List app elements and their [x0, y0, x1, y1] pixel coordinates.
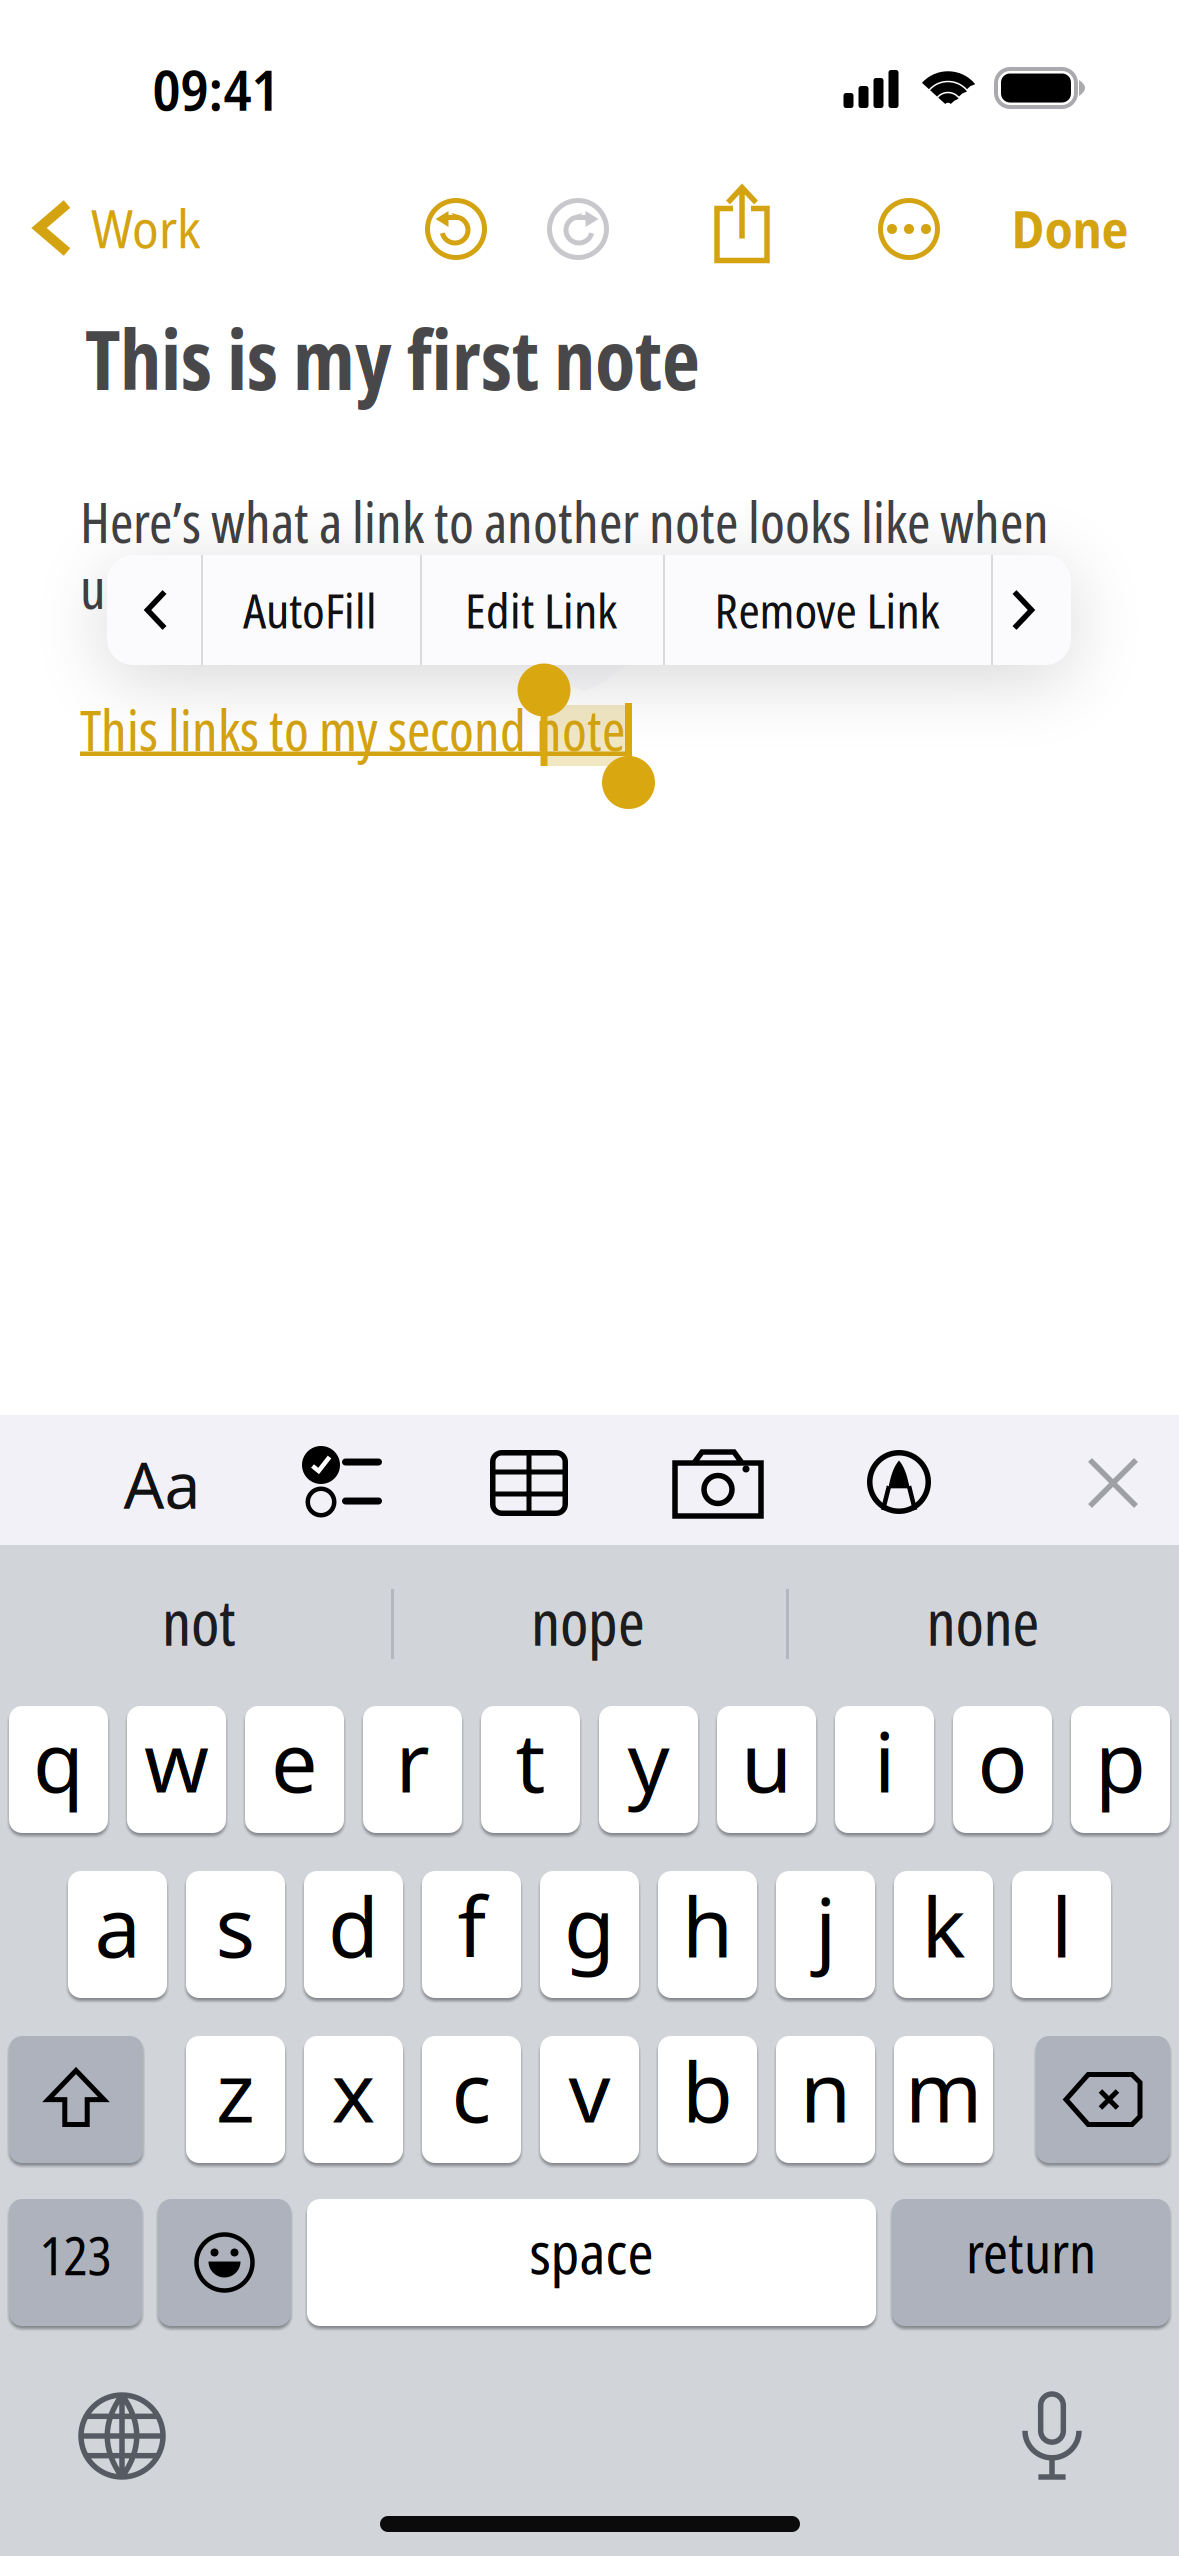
- button[interactable]: More menu items: [985, 557, 1061, 663]
- button[interactable]: x: [304, 2036, 403, 2163]
- button[interactable]: Share: [707, 179, 777, 269]
- button[interactable]: u: [717, 1706, 816, 1833]
- button[interactable]: Checklist: [277, 1425, 407, 1541]
- button[interactable]: Shift: [9, 2036, 143, 2163]
- staticText: u: [741, 1706, 792, 1815]
- staticText: y: [627, 1706, 669, 1815]
- button[interactable]: nope: [398, 1551, 778, 1691]
- button[interactable]: Previous menu items: [111, 557, 201, 663]
- button[interactable]: Dictate: [991, 2376, 1113, 2498]
- button[interactable]: return: [892, 2199, 1170, 2326]
- staticText: v: [568, 2036, 610, 2145]
- staticText: This is my first note: [85, 303, 700, 413]
- staticText: d: [328, 1871, 379, 1980]
- button[interactable]: space: [307, 2199, 876, 2326]
- staticText: 09:41: [152, 52, 279, 126]
- button[interactable]: Undo: [425, 198, 487, 260]
- staticText: AutoFill: [243, 578, 377, 642]
- staticText: Remove Link: [714, 578, 939, 642]
- staticText: u: [80, 550, 106, 624]
- button[interactable]: z: [186, 2036, 285, 2163]
- button[interactable]: b: [658, 2036, 757, 2163]
- staticText: x: [331, 2036, 375, 2145]
- button[interactable]: o: [953, 1706, 1052, 1833]
- staticText: j: [815, 1871, 836, 1980]
- button[interactable]: Edit Link: [421, 557, 661, 663]
- button[interactable]: v: [540, 2036, 639, 2163]
- button[interactable]: r: [363, 1706, 462, 1833]
- staticText: return: [966, 2214, 1096, 2289]
- button[interactable]: Format text: [102, 1426, 222, 1542]
- staticText: e: [271, 1706, 318, 1815]
- button[interactable]: Markup: [834, 1424, 964, 1540]
- staticText: s: [215, 1871, 255, 1980]
- button[interactable]: f: [422, 1871, 521, 1998]
- staticText: k: [921, 1871, 965, 1980]
- staticText: g: [564, 1871, 615, 1980]
- staticText: n: [800, 2036, 851, 2145]
- staticText: space: [529, 2212, 653, 2290]
- button[interactable]: l: [1012, 1871, 1111, 1998]
- button[interactable]: y: [599, 1706, 698, 1833]
- staticText: i: [874, 1706, 895, 1815]
- staticText: c: [451, 2036, 491, 2145]
- button[interactable]: none: [793, 1551, 1173, 1691]
- staticText: Aa: [123, 1441, 200, 1526]
- button[interactable]: k: [894, 1871, 993, 1998]
- button[interactable]: 123: [9, 2199, 142, 2326]
- staticText: a: [94, 1871, 140, 1980]
- staticText: none: [926, 1578, 1039, 1663]
- button[interactable]: s: [186, 1871, 285, 1998]
- button[interactable]: not: [9, 1551, 389, 1691]
- button[interactable]: Insert table: [464, 1425, 594, 1541]
- button[interactable]: j: [776, 1871, 875, 1998]
- button[interactable]: Next keyboard: [61, 2375, 183, 2497]
- button[interactable]: p: [1071, 1706, 1170, 1833]
- staticText: t: [515, 1706, 545, 1815]
- staticText: p: [1095, 1706, 1146, 1815]
- staticText: Edit Link: [465, 578, 617, 642]
- staticText: l: [1051, 1871, 1072, 1980]
- button[interactable]: h: [658, 1871, 757, 1998]
- staticText: nope: [531, 1578, 645, 1663]
- button[interactable]: Done: [1011, 196, 1128, 260]
- button[interactable]: Redo: [547, 198, 609, 260]
- button[interactable]: m: [894, 2036, 993, 2163]
- staticText: b: [682, 2036, 733, 2145]
- staticText: q: [33, 1706, 84, 1815]
- button[interactable]: g: [540, 1871, 639, 1998]
- button[interactable]: AutoFill: [202, 557, 418, 663]
- button[interactable]: e: [245, 1706, 344, 1833]
- button[interactable]: More actions: [878, 198, 940, 260]
- button[interactable]: Remove Link: [665, 557, 989, 663]
- button[interactable]: n: [776, 2036, 875, 2163]
- button[interactable]: w: [127, 1706, 226, 1833]
- staticText: h: [682, 1871, 733, 1980]
- staticText: Work: [91, 193, 201, 263]
- button[interactable]: a: [68, 1871, 167, 1998]
- staticText: z: [216, 2036, 255, 2145]
- staticText: Done: [1011, 193, 1128, 263]
- button[interactable]: t: [481, 1706, 580, 1833]
- staticText: Here’s what a link to another note looks…: [80, 484, 1049, 558]
- button[interactable]: Dismiss keyboard: [1058, 1428, 1168, 1538]
- staticText: f: [457, 1871, 485, 1980]
- button[interactable]: Insert photo: [653, 1426, 783, 1542]
- staticText: 123: [39, 2219, 111, 2290]
- button[interactable]: c: [422, 2036, 521, 2163]
- button[interactable]: d: [304, 1871, 403, 1998]
- staticText: o: [977, 1706, 1027, 1815]
- staticText: This links to my second note: [80, 692, 625, 766]
- staticText: m: [905, 2036, 982, 2145]
- staticText: not: [162, 1578, 236, 1663]
- staticText: w: [144, 1706, 209, 1815]
- button[interactable]: Delete: [1036, 2036, 1170, 2163]
- button[interactable]: i: [835, 1706, 934, 1833]
- button[interactable]: Back to Work folder: [39, 196, 201, 260]
- button[interactable]: q: [9, 1706, 108, 1833]
- button[interactable]: Emoji: [158, 2199, 291, 2326]
- staticText: r: [395, 1706, 429, 1815]
